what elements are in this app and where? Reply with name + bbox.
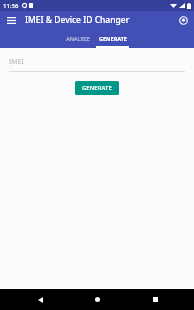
staticText: IMEI & Device ID Changer [25, 14, 130, 26]
button[interactable]: Recent apps [137, 289, 173, 310]
staticText: ANALYZE [66, 35, 90, 42]
button[interactable]: ANALYZE [62, 29, 94, 48]
staticText: GENERATE [82, 84, 112, 92]
staticText: 11:56 [3, 2, 19, 10]
staticText: GENERATE [99, 35, 127, 42]
button[interactable]: Help [172, 11, 194, 29]
button[interactable]: Back [22, 289, 58, 310]
button[interactable]: GENERATE [94, 29, 131, 48]
button[interactable]: GENERATE [75, 81, 119, 95]
staticText: IMEI [9, 57, 24, 67]
button[interactable]: IMEI [9, 57, 185, 72]
button[interactable]: Home [79, 289, 115, 310]
button[interactable]: Open navigation drawer [0, 11, 22, 29]
